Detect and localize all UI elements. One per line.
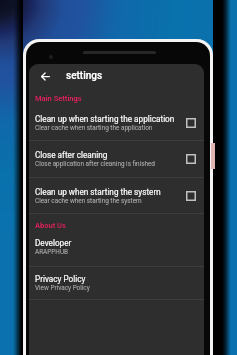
staticText: settings <box>66 70 103 82</box>
staticText: Close application after cleaning is fini… <box>35 160 155 168</box>
staticText: ARAPPHUB <box>35 248 69 256</box>
staticText: Clean up when starting the system <box>35 187 161 197</box>
staticText: Close after cleaning <box>35 150 108 160</box>
staticText: Clean up when starting the application <box>35 114 175 124</box>
button[interactable]: Privacy Policy <box>29 267 204 299</box>
staticText: View Privacy Policy <box>35 284 90 292</box>
button[interactable]: settings <box>66 64 103 82</box>
button[interactable]: Close after cleaning <box>29 141 204 176</box>
staticText: Clear cache when starting the system <box>35 197 142 205</box>
staticText: Clear cache when starting the applicatio… <box>35 124 153 132</box>
button[interactable]: Clean up when starting the system <box>29 178 204 214</box>
staticText: About Us <box>35 221 66 230</box>
staticText: Developer <box>35 238 72 248</box>
staticText: Main Settings <box>35 94 82 103</box>
button[interactable]: Back <box>33 64 57 88</box>
staticText: Privacy Policy <box>35 274 86 284</box>
button[interactable]: Clean up when starting the application <box>29 106 204 140</box>
button[interactable]: Developer <box>29 230 204 264</box>
